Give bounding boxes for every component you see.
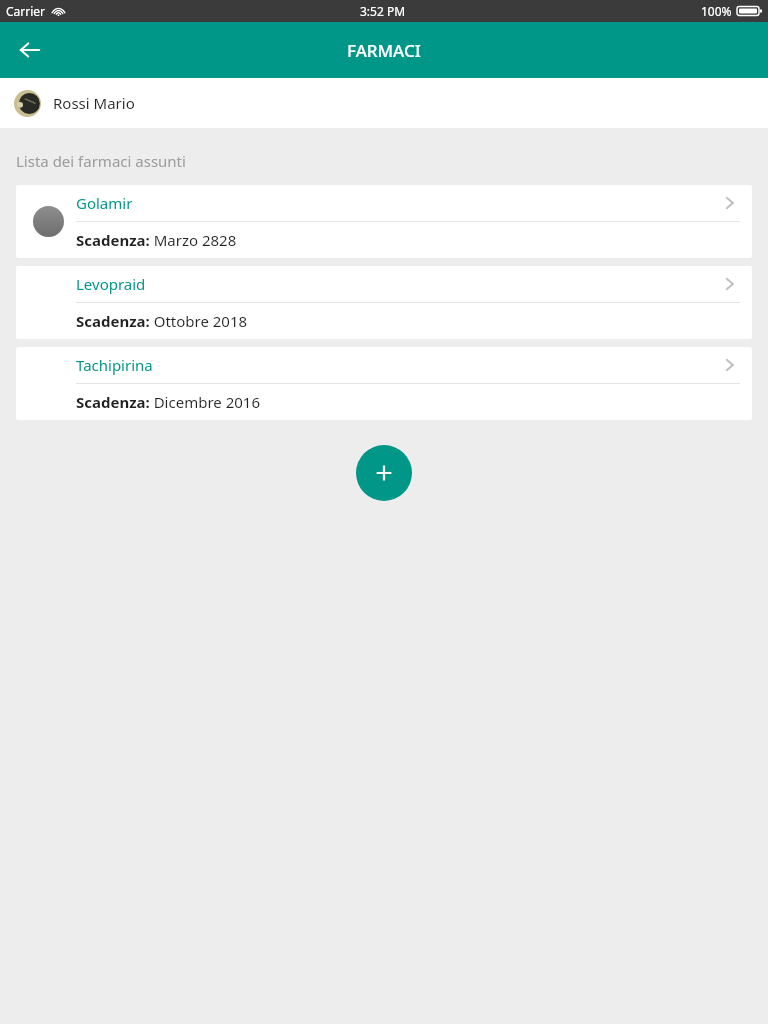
other: Open Golamir (720, 193, 740, 213)
staticText: Golamir (76, 193, 133, 213)
staticText: Lista dei farmaci assunti (16, 151, 186, 171)
staticText: 3:52 PM (360, 3, 406, 19)
button[interactable]: Golamir (16, 185, 752, 258)
button[interactable]: Add medicine (356, 445, 412, 501)
staticText: 100% (701, 3, 732, 19)
button[interactable]: Rossi Mario (0, 78, 768, 128)
button[interactable]: Back (10, 30, 50, 70)
staticText: Rossi Mario (53, 93, 135, 113)
staticText: Scadenza: Marzo 2828 (76, 230, 237, 250)
staticText: Scadenza: Dicembre 2016 (76, 392, 260, 412)
button[interactable]: Levopraid (16, 266, 752, 339)
button[interactable]: Tachipirina (16, 347, 752, 420)
staticText: Carrier (6, 3, 46, 19)
other: Open Levopraid (720, 274, 740, 294)
other: Open Tachipirina (720, 355, 740, 375)
staticText: Scadenza: Ottobre 2018 (76, 311, 248, 331)
staticText: Levopraid (76, 274, 146, 294)
staticText: Tachipirina (76, 355, 153, 375)
staticText: FARMACI (347, 39, 421, 62)
